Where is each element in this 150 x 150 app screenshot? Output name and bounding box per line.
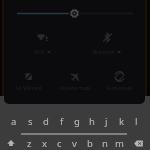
button[interactable]: Bluetooth — [81, 28, 133, 58]
staticText: Bluetooth — [93, 49, 115, 55]
staticText: j — [105, 115, 108, 128]
staticText: a — [11, 115, 17, 128]
staticText: v — [72, 137, 77, 150]
staticText: f — [60, 115, 64, 128]
button[interactable]: g — [69, 113, 84, 130]
staticText: c — [57, 137, 62, 150]
staticText: x — [42, 137, 48, 150]
button[interactable]: z — [22, 136, 37, 150]
button[interactable]: l — [129, 113, 144, 130]
staticText: n — [102, 137, 108, 150]
other: Shift — [7, 139, 15, 147]
button[interactable]: m — [112, 136, 127, 150]
staticText: d — [43, 115, 49, 128]
button[interactable]: b — [82, 136, 97, 150]
button[interactable]: f — [54, 113, 69, 130]
staticText: g — [74, 115, 80, 128]
staticText: Auto-rotate — [107, 85, 132, 91]
staticText: b — [87, 137, 93, 150]
button[interactable]: j — [99, 113, 114, 130]
button[interactable]: h — [84, 113, 99, 130]
button[interactable]: Brightness — [4, 4, 145, 23]
staticText: k — [119, 115, 125, 128]
staticText: No SIM card — [15, 85, 42, 91]
button[interactable]: v — [67, 136, 82, 150]
staticText: m — [115, 137, 124, 150]
button[interactable]: x — [37, 136, 52, 150]
staticText: s — [28, 115, 33, 128]
other: Backspace — [134, 139, 143, 148]
staticText: Airplane mode — [59, 85, 91, 91]
button[interactable]: Backspace — [127, 136, 150, 150]
button[interactable]: k — [114, 113, 129, 130]
button[interactable]: s — [22, 113, 38, 130]
button[interactable]: c — [52, 136, 67, 150]
button[interactable]: a — [6, 113, 22, 130]
button[interactable]: No SIM card — [5, 70, 51, 98]
button[interactable]: Airplane mode — [52, 70, 98, 98]
staticText: Wi-Fi — [34, 49, 45, 55]
button[interactable]: n — [97, 136, 112, 150]
staticText: z — [27, 137, 32, 150]
button[interactable]: Shift — [0, 136, 22, 150]
button[interactable]: d — [38, 113, 54, 130]
staticText: h — [89, 115, 95, 128]
button[interactable]: Auto-rotate — [96, 70, 142, 98]
button[interactable]: Wi-Fi — [16, 28, 68, 58]
staticText: l — [135, 115, 138, 128]
